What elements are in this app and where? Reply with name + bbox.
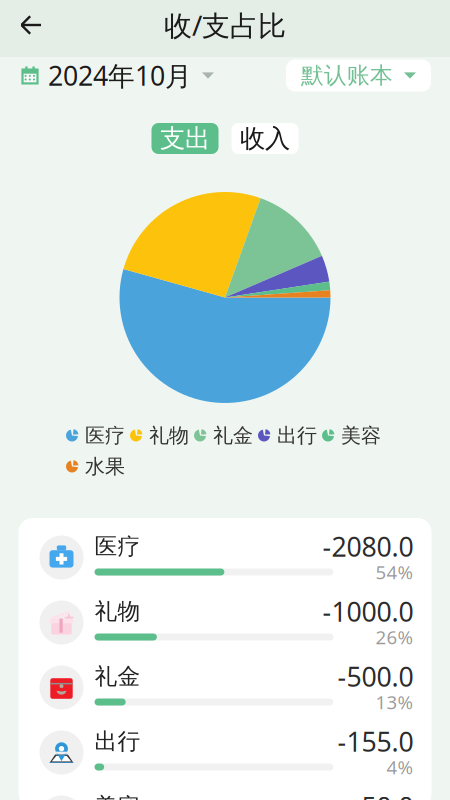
- staticText: 54%: [375, 560, 413, 584]
- button[interactable]: Back: [0, 3, 66, 47]
- button[interactable]: 支出: [151, 123, 218, 154]
- button[interactable]: 礼金: [18, 655, 431, 720]
- staticText: 礼物: [94, 598, 140, 625]
- staticText: 美容: [94, 793, 140, 800]
- staticText: 医疗: [85, 423, 125, 448]
- staticText: -2080.0: [322, 529, 413, 564]
- staticText: 13%: [375, 690, 413, 714]
- staticText: 收入: [240, 123, 290, 154]
- staticText: 礼金: [213, 423, 253, 448]
- staticText: 2024年10月: [48, 58, 192, 93]
- staticText: 支出: [160, 123, 210, 154]
- button[interactable]: 美容: [18, 785, 431, 800]
- staticText: -50.0: [352, 789, 413, 800]
- button[interactable]: 收入: [231, 123, 298, 154]
- staticText: -1000.0: [322, 594, 413, 629]
- staticText: 收/支占比: [164, 6, 286, 44]
- staticText: 美容: [341, 423, 381, 448]
- button[interactable]: 医疗: [18, 525, 431, 590]
- staticText: 26%: [375, 625, 413, 649]
- button[interactable]: 2024年10月: [0, 57, 226, 93]
- staticText: 礼金: [94, 663, 140, 690]
- staticText: 礼物: [149, 423, 189, 448]
- staticText: -155.0: [337, 724, 413, 759]
- button[interactable]: 出行: [18, 720, 431, 785]
- staticText: 出行: [277, 423, 317, 448]
- staticText: 医疗: [94, 533, 140, 560]
- staticText: 4%: [386, 755, 413, 779]
- button[interactable]: 礼物: [18, 590, 431, 655]
- staticText: 水果: [85, 454, 125, 479]
- button[interactable]: 默认账本: [286, 59, 431, 91]
- staticText: 出行: [94, 728, 140, 755]
- staticText: 默认账本: [301, 62, 393, 89]
- staticText: -500.0: [337, 659, 413, 694]
